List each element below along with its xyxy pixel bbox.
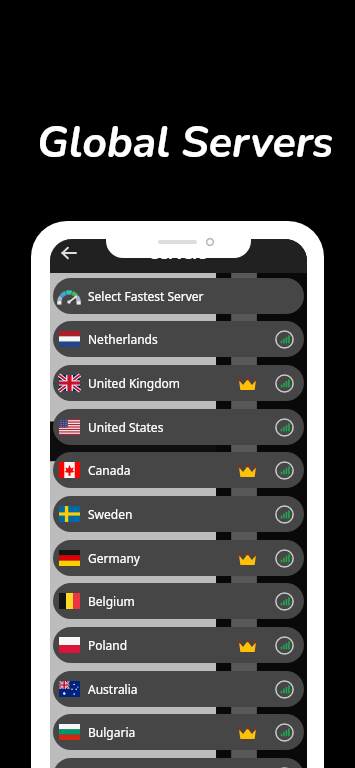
staticText: Sweden [88, 506, 133, 522]
staticText: United States [88, 419, 164, 435]
staticText: Global Servers [37, 114, 334, 173]
staticText: Belgium [88, 593, 135, 609]
button[interactable]: Czech Republic [53, 758, 304, 768]
staticText: Bulgaria [88, 724, 136, 740]
button[interactable]: Poland [53, 627, 304, 663]
button[interactable]: Bulgaria [53, 714, 304, 750]
staticText: Australia [88, 681, 138, 697]
button[interactable]: United States [53, 409, 304, 445]
button[interactable]: Sweden [53, 496, 304, 532]
staticText: Servers [151, 243, 207, 263]
button[interactable]: Back [58, 242, 80, 264]
staticText: Netherlands [88, 331, 158, 347]
button[interactable]: Canada [53, 452, 304, 488]
staticText: Poland [88, 637, 128, 653]
button[interactable]: Select Fastest Server [53, 278, 304, 314]
button[interactable]: Belgium [53, 583, 304, 619]
button[interactable]: Netherlands [53, 321, 304, 357]
staticText: United Kingdom [88, 375, 181, 391]
button[interactable]: Germany [53, 540, 304, 576]
staticText: Canada [88, 462, 131, 478]
staticText: Select Fastest Server [88, 288, 204, 304]
staticText: Germany [88, 550, 140, 566]
button[interactable]: United Kingdom [53, 365, 304, 401]
button[interactable]: Australia [53, 671, 304, 707]
